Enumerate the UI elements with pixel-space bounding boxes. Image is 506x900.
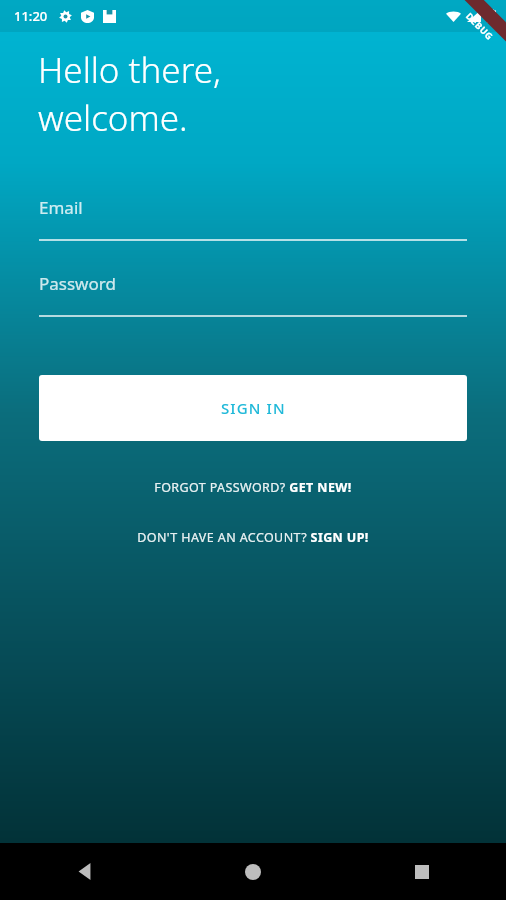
staticText: Email: [39, 196, 83, 219]
staticText: 11:20: [14, 7, 48, 25]
staticText: SIGN IN: [221, 398, 286, 418]
staticText: DEBUG: [464, 10, 496, 42]
staticText: FORGOT PASSWORD? GET NEW!: [154, 479, 352, 496]
button[interactable]: DON'T HAVE AN ACCOUNT? SIGN UP!: [0, 524, 506, 550]
button[interactable]: SIGN IN: [39, 375, 467, 441]
staticText: welcome.: [38, 94, 188, 142]
staticText: Hello there,: [38, 46, 221, 94]
button[interactable]: Recent apps: [337, 843, 506, 900]
staticText: Password: [39, 272, 116, 295]
staticText: DON'T HAVE AN ACCOUNT? SIGN UP!: [137, 529, 369, 546]
button[interactable]: Email: [39, 196, 467, 241]
button[interactable]: Password: [39, 272, 467, 317]
button[interactable]: Back: [0, 843, 168, 900]
button[interactable]: FORGOT PASSWORD? GET NEW!: [0, 474, 506, 500]
button[interactable]: Home: [168, 843, 337, 900]
